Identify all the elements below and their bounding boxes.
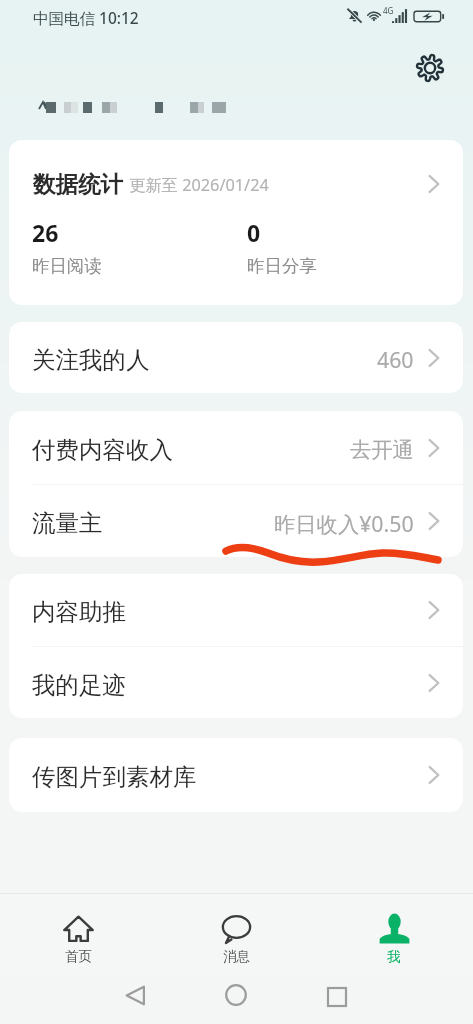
button[interactable]: 流量主 bbox=[9, 485, 463, 557]
staticText: 我的足迹 bbox=[32, 670, 126, 700]
staticText: 460 bbox=[377, 345, 414, 374]
staticText: 0 bbox=[247, 217, 261, 248]
button[interactable]: 关注我的人 bbox=[9, 322, 463, 393]
button[interactable]: Settings bbox=[410, 48, 450, 88]
staticText: 传图片到素材库 bbox=[32, 762, 197, 792]
button[interactable]: 数据统计 bbox=[9, 140, 463, 305]
staticText: 内容助推 bbox=[32, 597, 126, 627]
button[interactable]: Back bbox=[125, 985, 146, 1006]
staticText: 更新至 2026/01/24 bbox=[129, 174, 269, 196]
button[interactable]: 首页 bbox=[38, 894, 118, 974]
staticText: 去开通 bbox=[350, 436, 414, 463]
button[interactable]: 我 bbox=[354, 894, 434, 974]
staticText: 昨日收入¥0.50 bbox=[274, 509, 414, 538]
button[interactable]: Recents bbox=[327, 987, 347, 1007]
staticText: 关注我的人 bbox=[32, 345, 150, 375]
staticText: 我 bbox=[387, 948, 401, 965]
button[interactable]: 传图片到素材库 bbox=[9, 738, 463, 812]
staticText: 首页 bbox=[65, 948, 92, 965]
button[interactable]: 内容助推 bbox=[9, 574, 463, 646]
staticText: 中国电信 10:12 bbox=[33, 7, 139, 28]
button[interactable]: 消息 bbox=[196, 894, 276, 974]
staticText: 流量主 bbox=[32, 508, 103, 538]
button[interactable]: 付费内容收入 bbox=[9, 411, 463, 484]
button[interactable]: 我的足迹 bbox=[9, 647, 463, 718]
button[interactable]: Home bbox=[225, 984, 247, 1006]
staticText: 昨日阅读 bbox=[32, 255, 102, 277]
staticText: 昨日分享 bbox=[247, 255, 317, 277]
staticText: 26 bbox=[32, 217, 59, 248]
staticText: 4G bbox=[383, 5, 394, 16]
staticText: 数据统计 bbox=[33, 170, 123, 198]
staticText: 付费内容收入 bbox=[32, 435, 173, 465]
staticText: 消息 bbox=[223, 948, 250, 965]
